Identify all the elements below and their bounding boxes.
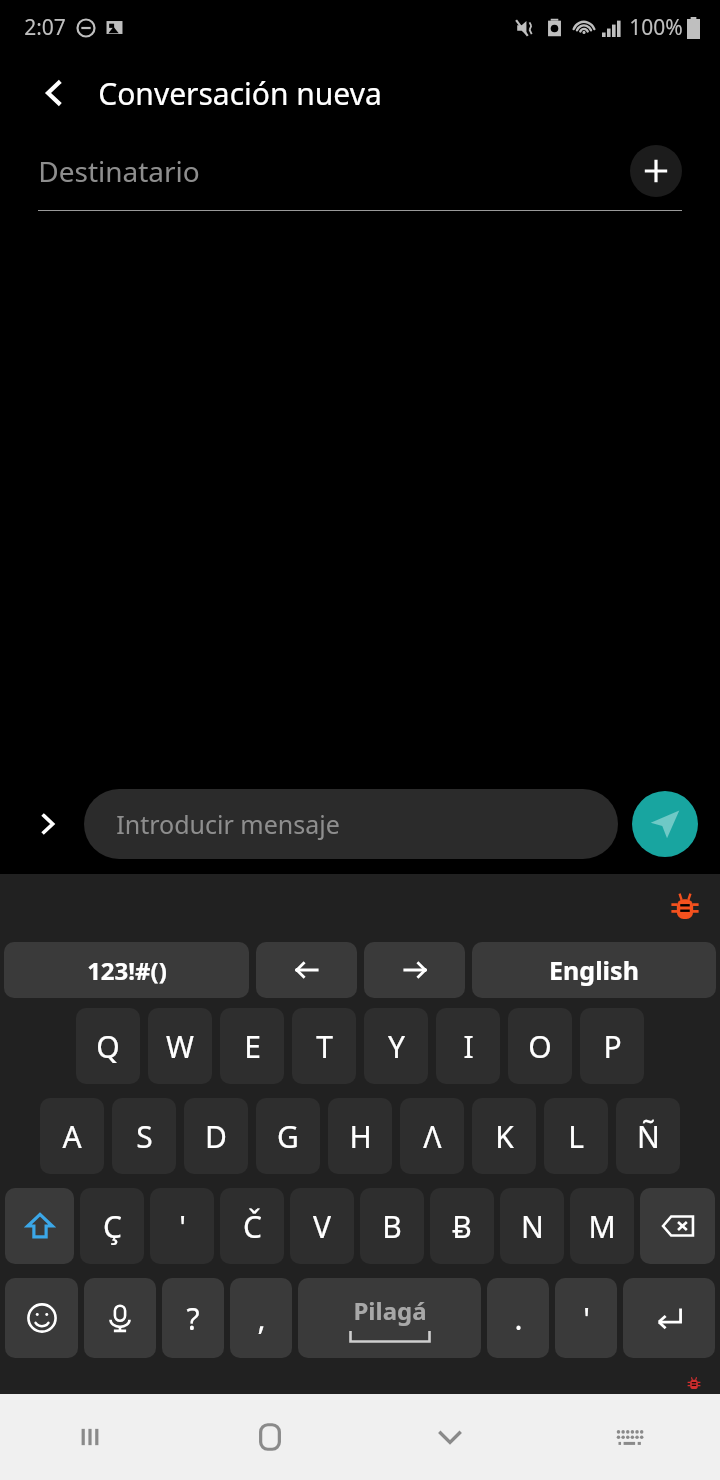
staticText: ? xyxy=(186,1298,200,1339)
staticText: Conversación nueva xyxy=(98,73,382,114)
staticText: Č xyxy=(243,1206,262,1247)
staticText: L xyxy=(568,1116,584,1157)
staticText: English xyxy=(549,953,639,987)
staticText: T xyxy=(316,1026,333,1067)
staticText: E xyxy=(244,1026,261,1067)
button[interactable]: M xyxy=(570,1188,634,1264)
button[interactable]: English xyxy=(472,942,716,998)
button[interactable]: B xyxy=(360,1188,424,1264)
button[interactable]: Space xyxy=(298,1278,481,1358)
staticText: P xyxy=(603,1026,622,1067)
button[interactable]: Debug xyxy=(668,891,702,925)
staticText: . xyxy=(514,1298,523,1339)
staticText: 100% xyxy=(629,13,683,42)
button[interactable]: Y xyxy=(364,1008,428,1084)
button[interactable]: Previous xyxy=(256,942,357,998)
staticText: Ç xyxy=(103,1206,122,1247)
button[interactable]: Expand options xyxy=(22,798,74,850)
staticText: D xyxy=(205,1116,227,1157)
button[interactable]: D xyxy=(184,1098,248,1174)
button[interactable]: 123!#() xyxy=(4,942,249,998)
button[interactable]: T xyxy=(292,1008,356,1084)
button[interactable]: I xyxy=(436,1008,500,1084)
button[interactable]: O xyxy=(508,1008,572,1084)
staticText: W xyxy=(166,1026,194,1067)
button[interactable]: Enter xyxy=(623,1278,715,1358)
button[interactable]: , xyxy=(230,1278,292,1358)
staticText: G xyxy=(277,1116,299,1157)
button[interactable]: Add recipient xyxy=(630,145,682,197)
button[interactable]: ? xyxy=(162,1278,224,1358)
button[interactable]: Back xyxy=(28,67,80,119)
staticText: H xyxy=(349,1116,372,1157)
button[interactable]: ' xyxy=(150,1188,214,1264)
button[interactable]: Backspace xyxy=(640,1188,715,1264)
staticText: M xyxy=(588,1206,616,1247)
staticText: V xyxy=(313,1206,331,1247)
staticText: N xyxy=(521,1206,544,1247)
staticText: I xyxy=(463,1026,474,1067)
button[interactable]: Hide keyboard xyxy=(360,1394,540,1480)
staticText: Destinatario xyxy=(38,152,200,190)
button[interactable]: H xyxy=(328,1098,392,1174)
staticText: B xyxy=(382,1206,402,1247)
button[interactable]: Home xyxy=(180,1394,360,1480)
button[interactable]: Voice input xyxy=(84,1278,156,1358)
button[interactable]: P xyxy=(580,1008,644,1084)
button[interactable]: . xyxy=(487,1278,549,1358)
button[interactable]: Emoji xyxy=(5,1278,78,1358)
button[interactable]: V xyxy=(290,1188,354,1264)
button[interactable]: G xyxy=(256,1098,320,1174)
staticText: Y xyxy=(388,1026,405,1067)
staticText: ' xyxy=(583,1298,590,1339)
button[interactable]: Recents xyxy=(0,1394,180,1480)
button[interactable]: Ñ xyxy=(616,1098,680,1174)
staticText: 2:07 xyxy=(24,13,66,42)
button[interactable]: Ç xyxy=(80,1188,144,1264)
button[interactable]: W xyxy=(148,1008,212,1084)
button[interactable]: K xyxy=(472,1098,536,1174)
button[interactable]: Change keyboard xyxy=(540,1394,720,1480)
staticText: 123!#() xyxy=(87,954,167,987)
staticText: Introducir mensaje xyxy=(116,807,340,841)
button[interactable]: A xyxy=(40,1098,104,1174)
staticText: Pilagá xyxy=(353,1294,427,1327)
staticText: K xyxy=(495,1116,514,1157)
staticText: S xyxy=(136,1116,153,1157)
button[interactable]: Introducir mensaje xyxy=(84,789,618,859)
button[interactable]: Q xyxy=(76,1008,140,1084)
button[interactable]: Shift xyxy=(5,1188,74,1264)
staticText: Q xyxy=(96,1026,120,1067)
staticText: Ñ xyxy=(637,1116,660,1157)
button[interactable]: E xyxy=(220,1008,284,1084)
staticText: ' xyxy=(179,1206,186,1247)
button[interactable]: S xyxy=(112,1098,176,1174)
staticText: O xyxy=(528,1026,552,1067)
staticText: Λ xyxy=(423,1116,442,1157)
button[interactable]: ' xyxy=(555,1278,617,1358)
button[interactable]: Send xyxy=(632,791,698,857)
button[interactable]: Č xyxy=(220,1188,284,1264)
button[interactable]: L xyxy=(544,1098,608,1174)
button[interactable]: Λ xyxy=(400,1098,464,1174)
staticText: A xyxy=(62,1116,82,1157)
staticText: Ƀ xyxy=(452,1206,472,1247)
button[interactable]: Next xyxy=(364,942,465,998)
staticText: , xyxy=(257,1298,266,1339)
button[interactable]: N xyxy=(500,1188,564,1264)
button[interactable]: Ƀ xyxy=(430,1188,494,1264)
